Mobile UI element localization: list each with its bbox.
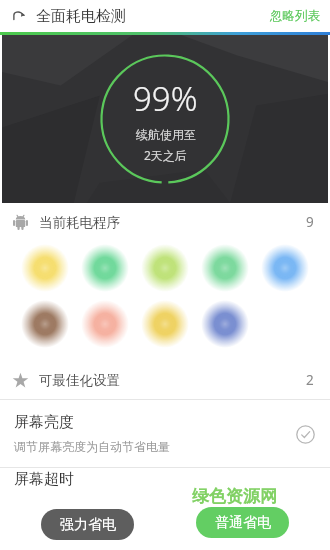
button[interactable]: 普通省电: [196, 507, 289, 538]
button[interactable]: 可最佳化设置: [0, 361, 330, 399]
staticText: 续航使用至: [136, 127, 196, 142]
staticText: 屏幕超时: [14, 470, 74, 488]
staticText: 忽略列表: [270, 8, 320, 24]
staticText: 2: [306, 371, 314, 389]
staticText: 强力省电: [60, 516, 116, 534]
staticText: 普通省电: [215, 514, 271, 532]
staticText: 2天之后: [144, 147, 187, 163]
staticText: 9: [306, 213, 314, 231]
button[interactable]: Optimized: [294, 423, 316, 445]
staticText: 调节屏幕亮度为自动节省电量: [14, 439, 170, 454]
staticText: 可最佳化设置: [39, 372, 120, 389]
button[interactable]: Back: [6, 3, 32, 29]
button[interactable]: 强力省电: [41, 509, 134, 540]
staticText: 屏幕亮度: [14, 413, 74, 432]
staticText: 当前耗电程序: [39, 214, 120, 231]
staticText: .com: [192, 507, 231, 521]
button[interactable]: 忽略列表: [268, 4, 322, 28]
staticText: 绿色资源网: [192, 486, 277, 507]
staticText: 99%: [133, 76, 198, 121]
staticText: 全面耗电检测: [36, 7, 126, 26]
button[interactable]: 屏幕超时: [0, 468, 330, 488]
button[interactable]: 屏幕亮度: [0, 400, 330, 467]
button[interactable]: 当前耗电程序: [0, 203, 330, 241]
